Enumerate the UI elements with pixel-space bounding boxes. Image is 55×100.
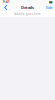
- staticText: 9:41: [3, 0, 10, 4]
- staticText: Subtitle goes here: [14, 12, 41, 16]
- staticText: Details: [21, 5, 34, 10]
- button[interactable]: Edit: [45, 4, 53, 11]
- staticText: ▮▮▮: [49, 0, 52, 3]
- button[interactable]: Back: [2, 4, 10, 11]
- staticText: Edit: [46, 5, 52, 10]
